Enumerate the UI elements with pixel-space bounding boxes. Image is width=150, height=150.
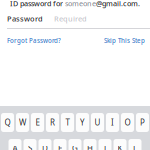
staticText: E [35,117,39,128]
button[interactable]: O [121,113,134,132]
button[interactable]: A [8,139,21,150]
button[interactable]: S [23,139,36,150]
staticText: J [104,143,106,150]
button[interactable]: G [68,139,81,150]
button[interactable]: F [53,139,66,150]
button[interactable]: K [113,139,126,150]
staticText: P [140,117,145,128]
staticText: Q [4,117,10,128]
staticText: ID password for [10,0,65,8]
staticText: I [111,117,114,128]
button[interactable]: J [98,139,111,150]
staticText: Required [54,13,87,24]
button[interactable]: Forgot Password? [7,36,61,45]
staticText: H [87,143,93,150]
button[interactable]: D [38,139,51,150]
staticText: S [28,143,32,150]
staticText: Forgot Password? [7,36,61,45]
button[interactable]: W [16,113,29,132]
button[interactable]: T [61,113,74,132]
staticText: F [58,143,62,150]
button[interactable]: U [91,113,104,132]
button[interactable]: H [83,139,96,150]
staticText: Skip This Step [104,36,145,45]
staticText: Y [80,117,85,128]
button[interactable]: R [46,113,59,132]
button[interactable]: Y [76,113,89,132]
staticText: A [12,143,17,150]
staticText: K [117,143,122,150]
staticText: Password [7,13,43,24]
button[interactable]: Q [1,113,14,132]
staticText: R [50,117,55,128]
staticText: G [72,143,78,150]
staticText: U [94,117,100,128]
staticText: D [42,143,48,150]
staticText: O [124,117,130,128]
staticText: W [19,117,26,128]
staticText: L [133,143,137,150]
button[interactable]: Skip This Step [104,36,145,45]
staticText: T [65,117,69,128]
button[interactable]: L [128,139,141,150]
button[interactable]: P [136,113,149,132]
button[interactable]: I [106,113,119,132]
staticText: someone [65,0,96,8]
staticText: @gmail.com. [96,0,140,8]
button[interactable]: E [31,113,44,132]
